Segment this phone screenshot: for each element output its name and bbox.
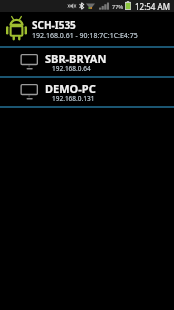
staticText: 192.168.0.64	[52, 64, 91, 73]
other: Silent mode	[67, 2, 76, 10]
other: Battery 77 percent	[125, 1, 131, 10]
other: Wi-Fi connected	[86, 2, 95, 10]
staticText: SBR-BRYAN	[45, 51, 107, 66]
button[interactable]: SBR-BRYAN	[0, 48, 174, 76]
staticText: 192.168.0.131	[52, 94, 95, 103]
staticText: 77%	[112, 3, 124, 10]
staticText: DEMO-PC	[45, 81, 96, 96]
staticText: 192.168.0.61 - 90:18:7C:1C:E4:75	[32, 31, 138, 41]
staticText: SCH-I535	[32, 18, 76, 32]
other: Bluetooth on	[79, 2, 84, 10]
other: Mobile signal	[99, 2, 109, 10]
staticText: 12:54 AM	[135, 1, 170, 12]
button[interactable]: DEMO-PC	[0, 78, 174, 106]
button[interactable]: SCH-I535	[0, 12, 174, 46]
